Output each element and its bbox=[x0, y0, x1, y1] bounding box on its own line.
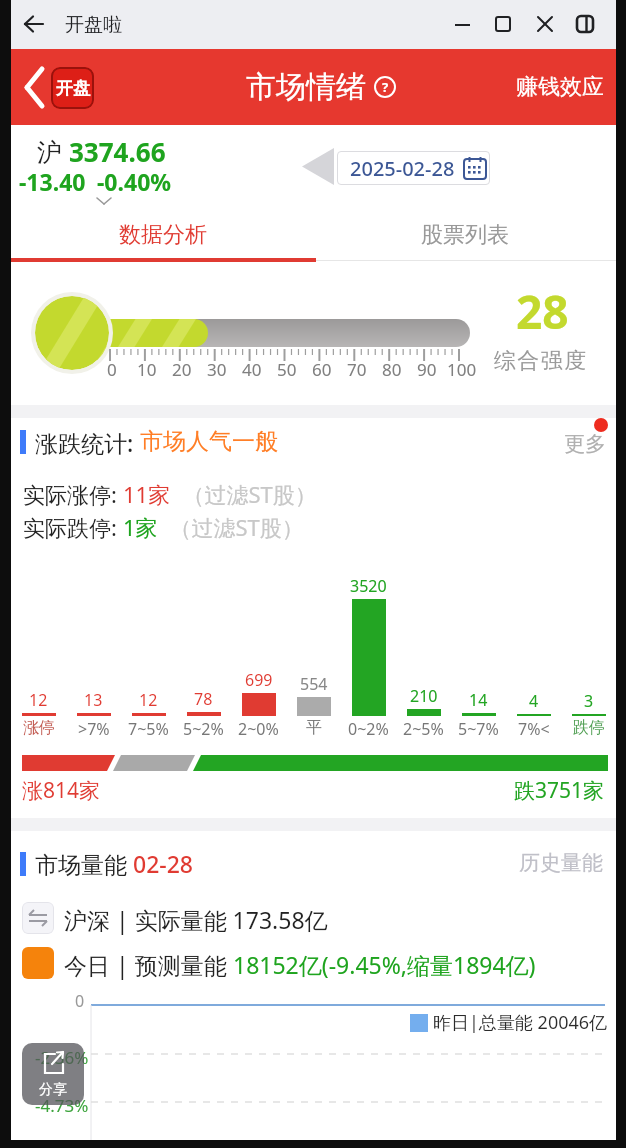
staticText: 今日 | 预测量能 bbox=[64, 949, 233, 980]
staticText: 5~7% bbox=[458, 718, 499, 740]
staticText: 0 bbox=[75, 990, 85, 1012]
staticText: 股票列表 bbox=[421, 221, 509, 249]
staticText: 实际涨停: bbox=[23, 479, 123, 509]
button[interactable] bbox=[300, 148, 335, 185]
staticText: 3520 bbox=[350, 575, 387, 597]
staticText: 2025-02-28 bbox=[350, 155, 455, 182]
staticText: ? bbox=[382, 78, 389, 96]
staticText: 实际跌停: bbox=[23, 512, 123, 542]
staticText: 沪深 | 实际量能 173.58亿 bbox=[64, 904, 328, 935]
staticText: 80 bbox=[382, 358, 402, 381]
staticText: >7% bbox=[78, 718, 110, 740]
staticText: 市场人气一般 bbox=[140, 427, 278, 456]
staticText: 市场情绪 bbox=[246, 68, 366, 106]
button[interactable]: 赚钱效应 bbox=[516, 73, 604, 101]
staticText: 18152亿(-9.45%,缩量1894亿) bbox=[233, 949, 536, 980]
staticText: 开盘啦 bbox=[65, 13, 122, 37]
button[interactable]: 2025-02-28 bbox=[337, 151, 490, 185]
staticText: 3 bbox=[584, 690, 594, 712]
staticText: 市场量能 bbox=[35, 848, 133, 879]
staticText: 78 bbox=[194, 688, 213, 710]
staticText: 50 bbox=[277, 358, 297, 381]
staticText: 开盘 bbox=[56, 78, 90, 99]
staticText: 数据分析 bbox=[119, 221, 207, 249]
button[interactable] bbox=[576, 15, 595, 33]
staticText: 30 bbox=[207, 358, 227, 381]
button[interactable] bbox=[455, 16, 471, 32]
button[interactable] bbox=[496, 16, 512, 32]
staticText: 28 bbox=[516, 280, 569, 343]
staticText: 60 bbox=[312, 358, 332, 381]
staticText: 跌停 bbox=[573, 718, 605, 738]
staticText: 100 bbox=[447, 358, 477, 381]
staticText: 14 bbox=[469, 689, 488, 711]
button[interactable]: 更多 bbox=[564, 431, 606, 457]
staticText: -4.73% bbox=[35, 1094, 89, 1117]
staticText: 40 bbox=[242, 358, 262, 381]
staticText: 1家 bbox=[123, 512, 158, 542]
staticText: 2~5% bbox=[403, 718, 444, 740]
button[interactable]: 数据分析 bbox=[11, 208, 314, 262]
staticText: 平 bbox=[306, 718, 322, 738]
staticText: 昨日|总量能 20046亿 bbox=[433, 1010, 608, 1035]
staticText: 90 bbox=[417, 358, 437, 381]
staticText: 3374.66 bbox=[69, 134, 166, 169]
button[interactable]: 股票列表 bbox=[314, 208, 616, 262]
staticText: 11家 bbox=[123, 479, 171, 509]
staticText: 7%< bbox=[518, 718, 550, 740]
staticText: 554 bbox=[300, 673, 328, 695]
staticText: 0 bbox=[107, 358, 117, 381]
staticText: 4 bbox=[529, 690, 539, 712]
staticText: -0.40% bbox=[97, 166, 172, 197]
staticText: 涨跌统计: bbox=[35, 427, 140, 458]
staticText: 0~2% bbox=[348, 718, 389, 740]
staticText: 13 bbox=[84, 689, 103, 711]
staticText: 10 bbox=[137, 358, 157, 381]
staticText: （过滤ST股） bbox=[171, 479, 317, 509]
staticText: 02-28 bbox=[133, 848, 194, 879]
staticText: -13.40 bbox=[19, 166, 86, 197]
staticText: 沪 bbox=[37, 134, 69, 168]
button[interactable] bbox=[23, 67, 47, 108]
staticText: 12 bbox=[139, 689, 158, 711]
button[interactable]: 分享 bbox=[22, 1043, 84, 1105]
button[interactable]: 历史量能 bbox=[519, 850, 603, 876]
staticText: 5~2% bbox=[183, 718, 224, 740]
button[interactable] bbox=[23, 14, 45, 34]
staticText: 210 bbox=[410, 685, 438, 707]
staticText: （过滤ST股） bbox=[158, 512, 304, 542]
staticText: 12 bbox=[29, 689, 48, 711]
staticText: 涨停 bbox=[23, 718, 55, 738]
staticText: 20 bbox=[172, 358, 192, 381]
staticText: 2~0% bbox=[238, 718, 279, 740]
staticText: 跌3751家 bbox=[514, 776, 605, 805]
staticText: 涨814家 bbox=[22, 776, 101, 805]
staticText: 综合强度 bbox=[493, 347, 587, 375]
staticText: 699 bbox=[245, 669, 273, 691]
staticText: 分享 bbox=[39, 1081, 67, 1099]
button[interactable] bbox=[537, 16, 553, 32]
staticText: 7~5% bbox=[128, 718, 169, 740]
staticText: 70 bbox=[347, 358, 367, 381]
staticText: -2.36% bbox=[35, 1046, 89, 1069]
